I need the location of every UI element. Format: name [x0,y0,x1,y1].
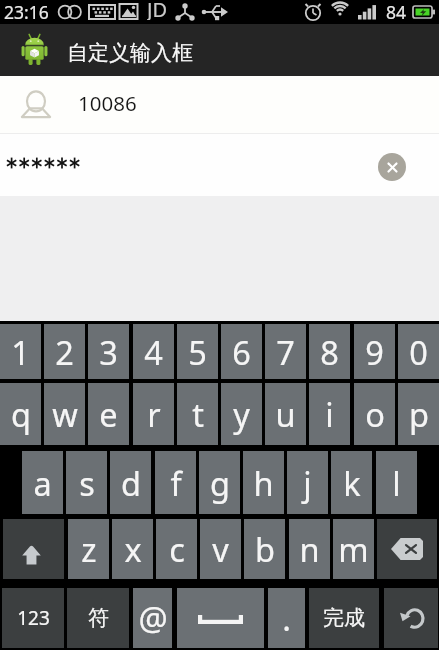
staticText: h [253,461,274,505]
staticText: z [81,527,97,571]
button[interactable]: o [354,383,395,445]
staticText: c [169,527,185,571]
button[interactable]: a [22,451,63,514]
button[interactable]: v [200,519,241,579]
button[interactable]: q [0,383,41,445]
staticText: w [52,392,78,436]
button[interactable]: t [177,383,218,445]
button[interactable]: p [398,383,439,445]
button[interactable]: s [66,451,107,514]
staticText: n [299,527,320,571]
button[interactable]: j [287,451,328,514]
staticText: u [275,392,296,436]
button[interactable]: y [221,383,262,445]
staticText: d [121,461,141,505]
button[interactable]: x [112,519,153,579]
button[interactable]: m [333,519,374,579]
button[interactable]: l [376,451,417,514]
staticText: 8 [320,330,339,374]
button[interactable]: 符 [67,588,129,648]
staticText: 9 [365,330,384,374]
staticText: m [338,527,369,571]
staticText: 4 [144,330,163,374]
button[interactable]: u [265,383,306,445]
staticText: 10086 [78,89,137,117]
button[interactable]: i [309,383,350,445]
button[interactable]: k [331,451,372,514]
staticText: 完成 [323,605,365,631]
staticText: g [210,461,230,505]
button[interactable]: Space [177,588,264,648]
button[interactable]: Delete [377,519,437,579]
staticText: 1 [11,330,30,374]
staticText: 23:16 [4,0,49,23]
staticText: t [192,392,204,436]
staticText: k [343,461,361,505]
button[interactable]: @ [133,588,172,648]
button[interactable]: e [88,383,129,445]
staticText: q [11,392,31,436]
button[interactable]: 7 [265,324,306,379]
button[interactable]: z [68,519,109,579]
staticText: p [409,392,429,436]
staticText: a [33,461,52,505]
button[interactable]: 5 [177,324,218,379]
button[interactable]: Clear text [0,134,439,196]
staticText: i [325,392,334,436]
staticText: r [147,392,161,436]
button[interactable]: r [133,383,174,445]
button[interactable]: 10086 [0,76,439,133]
staticText: j [303,461,312,505]
staticText: 自定义输入框 [67,40,193,66]
staticText: x [124,527,142,571]
staticText: 5 [188,330,207,374]
button[interactable]: Shift [3,519,64,579]
button[interactable]: f [155,451,196,514]
button[interactable]: 9 [354,324,395,379]
button[interactable]: 123 [2,588,64,648]
staticText: y [233,392,250,436]
button[interactable]: 3 [88,324,129,379]
staticText: 0 [409,330,428,374]
button[interactable]: c [156,519,197,579]
button[interactable]: 8 [309,324,350,379]
button[interactable]: Clear text [378,153,406,181]
staticText: l [392,461,401,505]
button[interactable]: g [199,451,240,514]
staticText: 84 [386,0,407,24]
staticText: JD [147,0,168,20]
staticText: b [255,527,275,571]
button[interactable]: d [110,451,151,514]
staticText: e [99,392,118,436]
button[interactable]: . [268,588,305,648]
button[interactable]: h [243,451,284,514]
button[interactable]: b [244,519,285,579]
staticText: 123 [17,605,50,631]
staticText: . [282,596,291,640]
button[interactable]: 1 [0,324,41,379]
button[interactable]: w [44,383,85,445]
staticText: 6 [232,330,251,374]
staticText: 2 [55,330,74,374]
button[interactable]: 完成 [309,588,379,648]
button[interactable]: 6 [221,324,262,379]
staticText: 符 [88,605,109,631]
staticText: 7 [276,330,295,374]
staticText: v [212,527,229,571]
staticText: 3 [99,330,118,374]
staticText: f [170,461,182,505]
staticText: o [365,392,385,436]
button[interactable]: Enter [384,588,438,648]
button[interactable]: 2 [44,324,85,379]
staticText: @ [138,596,168,640]
button[interactable]: 4 [133,324,174,379]
staticText: s [79,461,95,505]
button[interactable]: n [289,519,330,579]
button[interactable]: 0 [398,324,439,379]
